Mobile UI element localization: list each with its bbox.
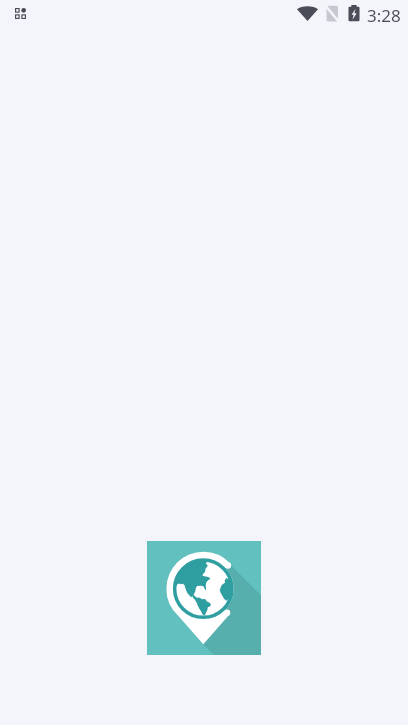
staticText: 3:28 [367,4,401,27]
button[interactable]: Notifications [15,8,26,19]
